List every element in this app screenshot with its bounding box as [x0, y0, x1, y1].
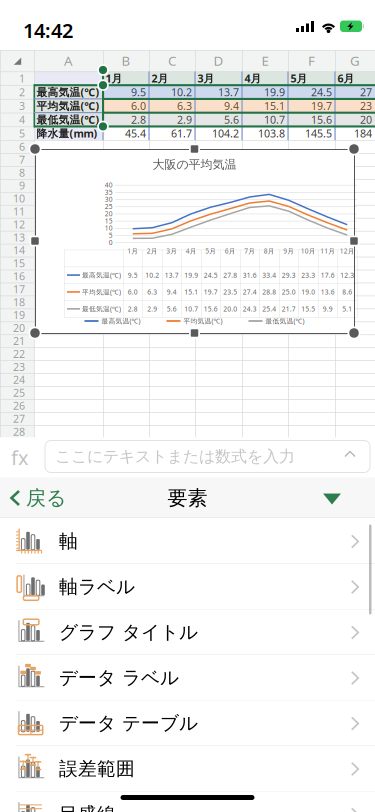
- staticText: 24.3: [243, 304, 257, 313]
- staticText: 13: [13, 230, 25, 244]
- staticText: 14: [13, 243, 25, 257]
- staticText: 22: [13, 347, 25, 361]
- staticText: 最高気温(℃): [82, 271, 121, 279]
- staticText: 29.3: [282, 271, 296, 279]
- staticText: 1: [19, 71, 25, 85]
- staticText: 最低気温(℃): [36, 112, 99, 127]
- staticText: 軸: [59, 530, 78, 553]
- staticText: 1月: [127, 246, 138, 255]
- button[interactable]: 軸ラベル: [0, 564, 375, 609]
- staticText: 4: [19, 112, 25, 127]
- staticText: 20: [360, 112, 372, 127]
- staticText: 9.5: [128, 271, 138, 279]
- button[interactable]: グラフ タイトル: [0, 609, 375, 655]
- staticText: 15.1: [264, 99, 285, 113]
- staticText: 19.9: [184, 271, 198, 279]
- button[interactable]: Collapse: [311, 481, 353, 516]
- staticText: 5月: [205, 246, 216, 255]
- staticText: 6: [19, 139, 25, 154]
- staticText: 13.7: [165, 271, 179, 279]
- staticText: 24: [13, 373, 25, 387]
- staticText: 25.0: [282, 287, 296, 296]
- staticText: 5月: [290, 71, 307, 85]
- staticText: 10.2: [145, 271, 159, 279]
- staticText: 23: [360, 99, 372, 113]
- staticText: 戻る: [26, 486, 66, 510]
- button[interactable]: ここにテキストまたは数式を入力: [45, 440, 370, 472]
- button[interactable]: 戻る: [4, 477, 72, 518]
- button[interactable]: 軸: [0, 518, 375, 564]
- staticText: 15: [105, 216, 113, 225]
- staticText: 最高気温(℃): [36, 85, 99, 99]
- staticText: 6.0: [131, 99, 146, 113]
- staticText: 27: [13, 411, 25, 426]
- staticText: 2.9: [147, 304, 157, 313]
- staticText: 15.6: [204, 304, 218, 313]
- staticText: 16: [13, 269, 25, 283]
- staticText: 104.2: [212, 126, 239, 140]
- staticText: 5: [19, 126, 25, 140]
- staticText: 2月: [151, 71, 168, 85]
- staticText: 19: [13, 308, 25, 322]
- staticText: 40: [105, 180, 113, 189]
- staticText: 8: [19, 165, 25, 180]
- staticText: 19.9: [264, 85, 285, 99]
- staticText: 25: [13, 386, 25, 400]
- staticText: 21: [13, 334, 25, 348]
- button[interactable]: 目盛線: [0, 791, 375, 812]
- staticText: 10.7: [264, 112, 285, 127]
- staticText: 5.1: [342, 304, 352, 313]
- staticText: データ ラベル: [59, 666, 179, 689]
- staticText: 9.5: [131, 85, 146, 99]
- staticText: 19.7: [204, 287, 218, 296]
- staticText: 6.3: [177, 99, 192, 113]
- staticText: ここにテキストまたは数式を入力: [55, 447, 295, 466]
- staticText: 23: [13, 360, 25, 374]
- staticText: 最高気温(℃): [101, 317, 140, 325]
- staticText: 15.6: [311, 112, 332, 127]
- staticText: 4月: [186, 246, 197, 255]
- staticText: 27: [360, 85, 372, 99]
- staticText: 30: [105, 195, 113, 204]
- staticText: 10.7: [184, 304, 198, 313]
- staticText: 0: [109, 238, 113, 247]
- staticText: 26: [13, 398, 25, 413]
- staticText: 平均気温(℃): [36, 99, 99, 113]
- staticText: 103.8: [258, 126, 285, 140]
- staticText: 2.8: [128, 304, 138, 313]
- staticText: 19.0: [301, 287, 315, 296]
- staticText: 9: [19, 178, 25, 193]
- staticText: 5.6: [224, 112, 239, 127]
- staticText: 12: [13, 217, 25, 231]
- staticText: A: [64, 52, 73, 69]
- staticText: E: [261, 52, 268, 69]
- button[interactable]: データ テーブル: [0, 700, 375, 746]
- staticText: 61.7: [171, 126, 192, 140]
- staticText: 2.8: [131, 112, 146, 127]
- staticText: 6.0: [128, 287, 138, 296]
- button[interactable]: 誤差範囲: [0, 746, 375, 791]
- staticText: 7月: [244, 246, 255, 255]
- staticText: G: [350, 52, 360, 69]
- staticText: 12月: [340, 246, 355, 255]
- staticText: 45.4: [125, 126, 146, 140]
- staticText: 28: [13, 424, 25, 439]
- staticText: 2月: [147, 246, 158, 255]
- staticText: 5: [109, 231, 113, 240]
- button[interactable]: データ ラベル: [0, 655, 375, 700]
- staticText: 6.3: [147, 287, 157, 296]
- staticText: 20.0: [223, 304, 237, 313]
- staticText: 誤差範囲: [59, 757, 135, 780]
- staticText: 10.2: [171, 85, 192, 99]
- staticText: 13.7: [218, 85, 239, 99]
- staticText: 20: [105, 209, 113, 218]
- staticText: 14:42: [23, 17, 73, 44]
- staticText: 1月: [105, 71, 122, 85]
- staticText: 7: [19, 152, 25, 167]
- staticText: 18: [13, 295, 25, 309]
- staticText: 9.4: [224, 99, 239, 113]
- staticText: 4月: [244, 71, 261, 85]
- staticText: 27.8: [223, 271, 237, 279]
- staticText: 2.9: [177, 112, 192, 127]
- staticText: 軸ラベル: [59, 575, 135, 598]
